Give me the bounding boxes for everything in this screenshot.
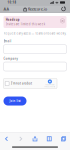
button[interactable]: Join list [3,96,26,105]
button[interactable]: Email [3,45,66,54]
staticText: Email [3,39,11,43]
staticText: 10:18 [7,1,16,4]
button[interactable]: Reload [59,5,67,12]
button[interactable]: Bookmarks [43,133,55,144]
staticText: fleetcore.io [28,6,47,12]
staticText: Heads up [6,18,20,21]
button[interactable]: Tabs [57,133,69,144]
button[interactable]: Back [0,133,12,144]
staticText: reCAPTCHA [45,84,54,86]
staticText: I'm not a robot [11,82,32,85]
button[interactable]: Forward [15,133,27,144]
staticText: AA [3,6,9,12]
staticText: Join list [9,99,20,103]
staticText: Request early access — teams onboard wee… [3,32,66,35]
staticText: Invites are limited this week [6,22,45,26]
button[interactable]: Dismiss [59,18,65,24]
staticText: Privacy - Terms [44,86,55,88]
button[interactable]: Share [29,133,41,144]
button[interactable]: Page settings [2,5,10,12]
button[interactable]: I'm not a robot [3,78,57,88]
button[interactable]: Company [3,62,66,71]
staticText: Company [3,57,17,60]
